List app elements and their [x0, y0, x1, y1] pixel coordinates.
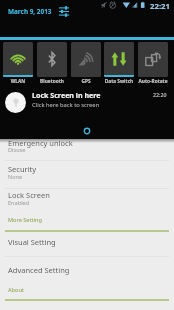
staticText: 22:21: [150, 1, 171, 12]
button[interactable]: Advanced Setting: [0, 256, 174, 286]
button[interactable]: Lock Screen: [0, 188, 174, 216]
button[interactable]: WLAN: [3, 42, 33, 77]
button[interactable]: More Setting: [0, 216, 174, 229]
staticText: 22:20: [153, 91, 167, 98]
staticText: About: [8, 286, 24, 294]
button[interactable]: Lock Screen in here: [0, 88, 174, 119]
button[interactable]: Emergency unlock: [0, 132, 174, 161]
staticText: March 9, 2013: [8, 7, 52, 16]
staticText: Bluetooth: [29, 78, 75, 85]
staticText: Data Switch: [96, 78, 142, 85]
button[interactable]: Bluetooth: [37, 42, 67, 77]
staticText: WLAN: [0, 78, 41, 85]
staticText: Advanced Setting: [8, 265, 70, 275]
staticText: Click here back to screen: [32, 101, 100, 109]
staticText: Lock Screen: [8, 190, 50, 200]
staticText: Auto-Rotate: [130, 78, 174, 85]
staticText: Security: [8, 164, 37, 174]
staticText: GPS: [63, 78, 109, 85]
button[interactable]: Security: [0, 161, 174, 189]
button[interactable]: Quick settings: [57, 4, 71, 18]
button[interactable]: Data Switch: [104, 42, 134, 77]
button[interactable]: Auto-Rotate: [138, 42, 168, 77]
staticText: None: [8, 173, 23, 181]
button[interactable]: About: [0, 286, 174, 299]
staticText: Lock Screen in here: [32, 90, 101, 100]
staticText: Visual Setting: [8, 237, 56, 247]
button[interactable]: GPS: [71, 42, 101, 77]
staticText: More Setting: [8, 216, 42, 224]
staticText: Disuse: [8, 146, 26, 154]
button[interactable]: Visual Setting: [0, 230, 174, 256]
staticText: Emergency unlock: [8, 138, 73, 148]
staticText: Enabled: [8, 199, 30, 207]
